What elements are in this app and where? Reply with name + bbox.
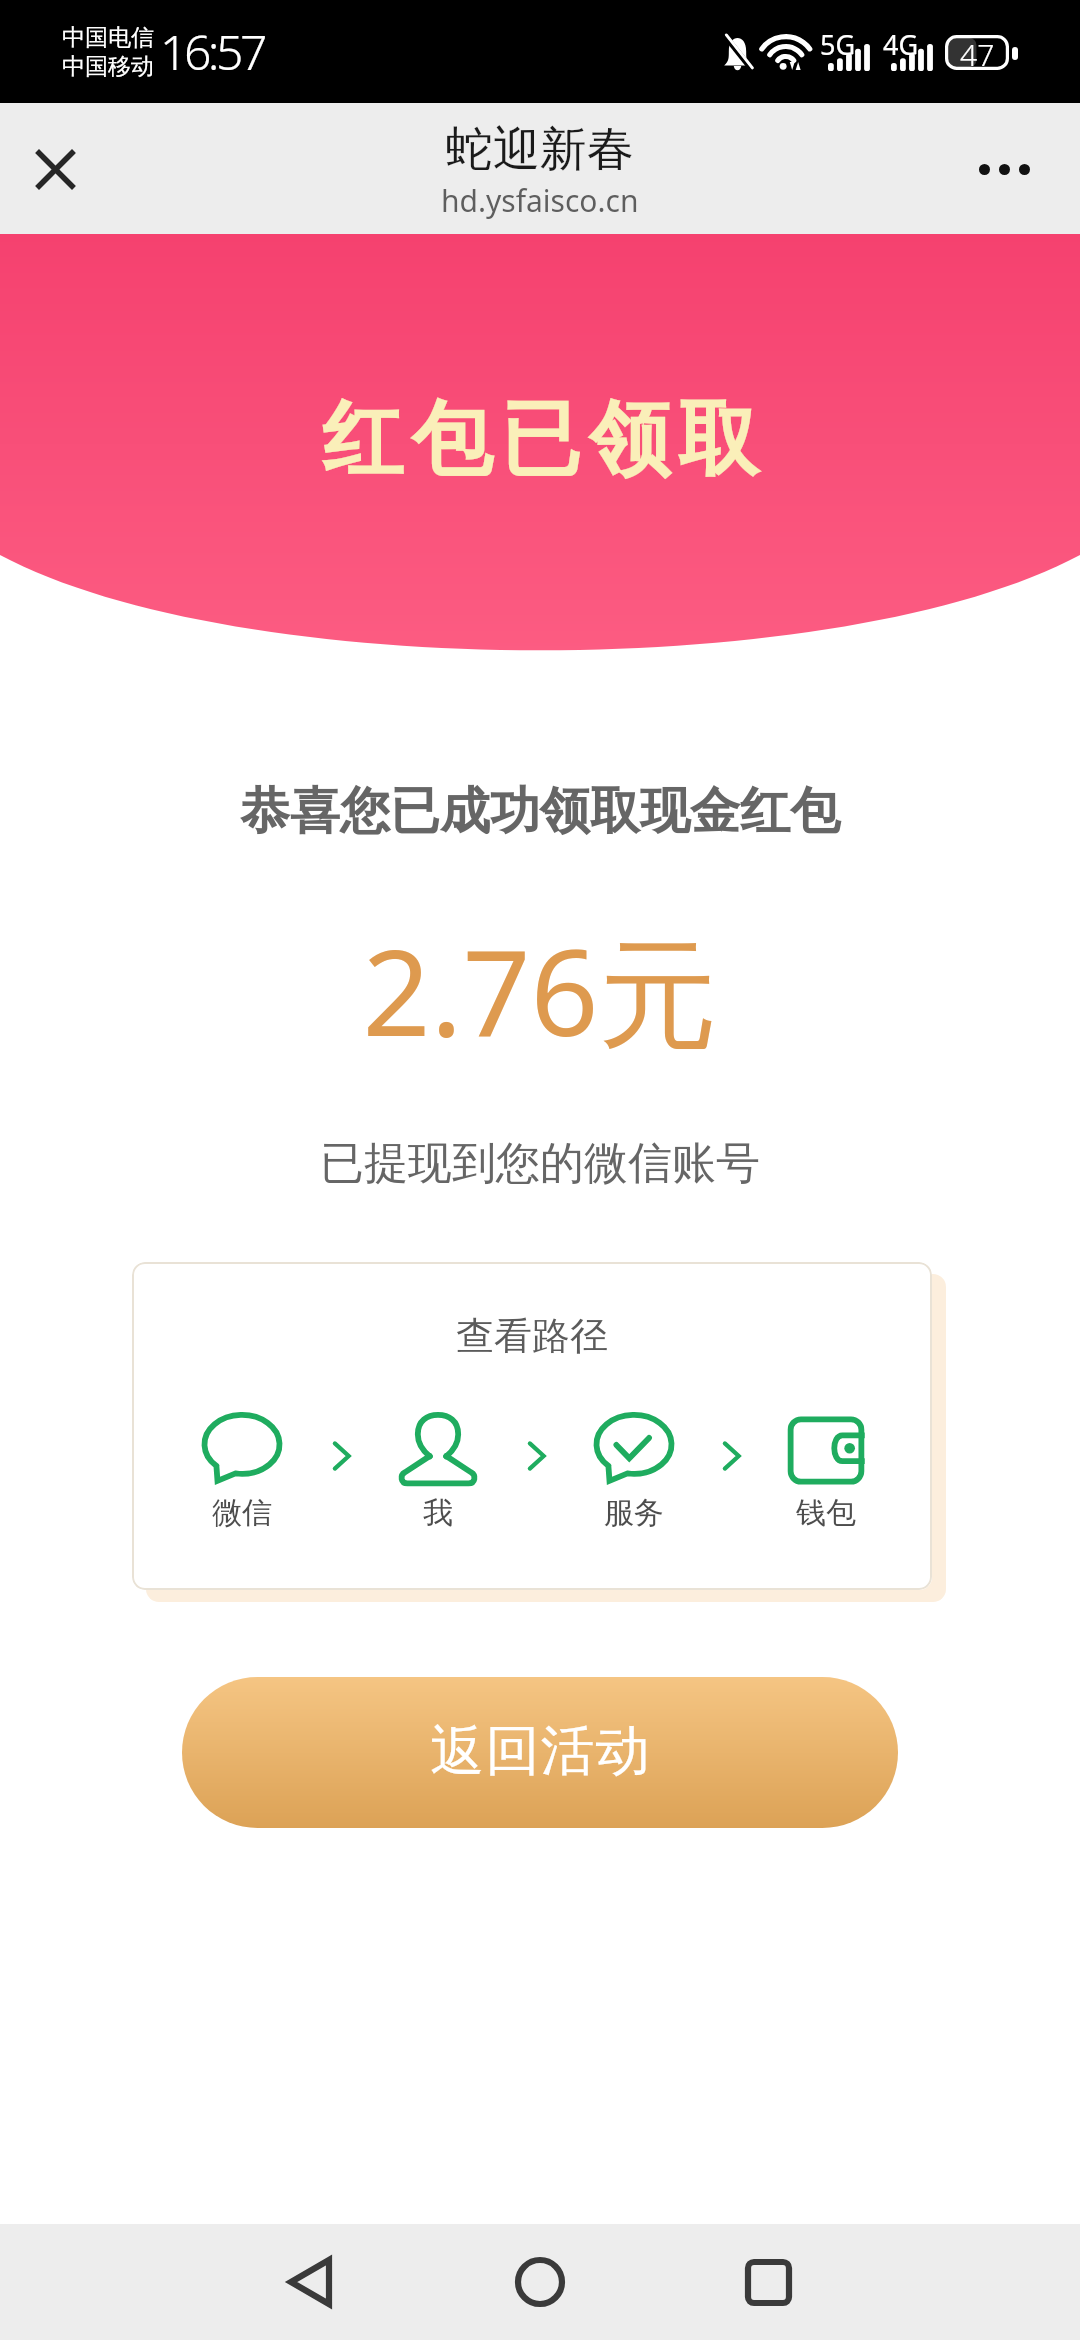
staticText: 返回活动	[430, 1717, 650, 1785]
staticText: 查看路径	[456, 1312, 608, 1360]
staticText: 16:57	[160, 19, 264, 84]
button[interactable]: Home	[480, 2224, 600, 2340]
button[interactable]: 返回活动	[182, 1677, 898, 1828]
staticText: hd.ysfaisco.cn	[441, 180, 639, 221]
staticText: 47	[960, 34, 995, 69]
button[interactable]: Close	[18, 132, 92, 206]
staticText: 恭喜您已成功领取现金红包	[240, 780, 840, 843]
staticText: 4G	[883, 26, 919, 63]
staticText: 服务	[604, 1494, 664, 1532]
staticText: 我	[423, 1494, 453, 1532]
button[interactable]: More options	[940, 134, 1030, 204]
staticText: 钱包	[796, 1494, 856, 1532]
button[interactable]: Back	[248, 2224, 368, 2340]
staticText: 红包已领取	[318, 389, 763, 491]
staticText: 微信	[212, 1494, 272, 1532]
staticText: 蛇迎新春	[446, 120, 634, 179]
staticText: 2.76元	[362, 909, 718, 1072]
button[interactable]: Recents	[708, 2224, 828, 2340]
staticText: 中国移动	[62, 52, 154, 81]
staticText: 中国电信	[62, 23, 154, 52]
staticText: 5G	[820, 26, 856, 63]
staticText: 已提现到您的微信账号	[320, 1136, 760, 1191]
